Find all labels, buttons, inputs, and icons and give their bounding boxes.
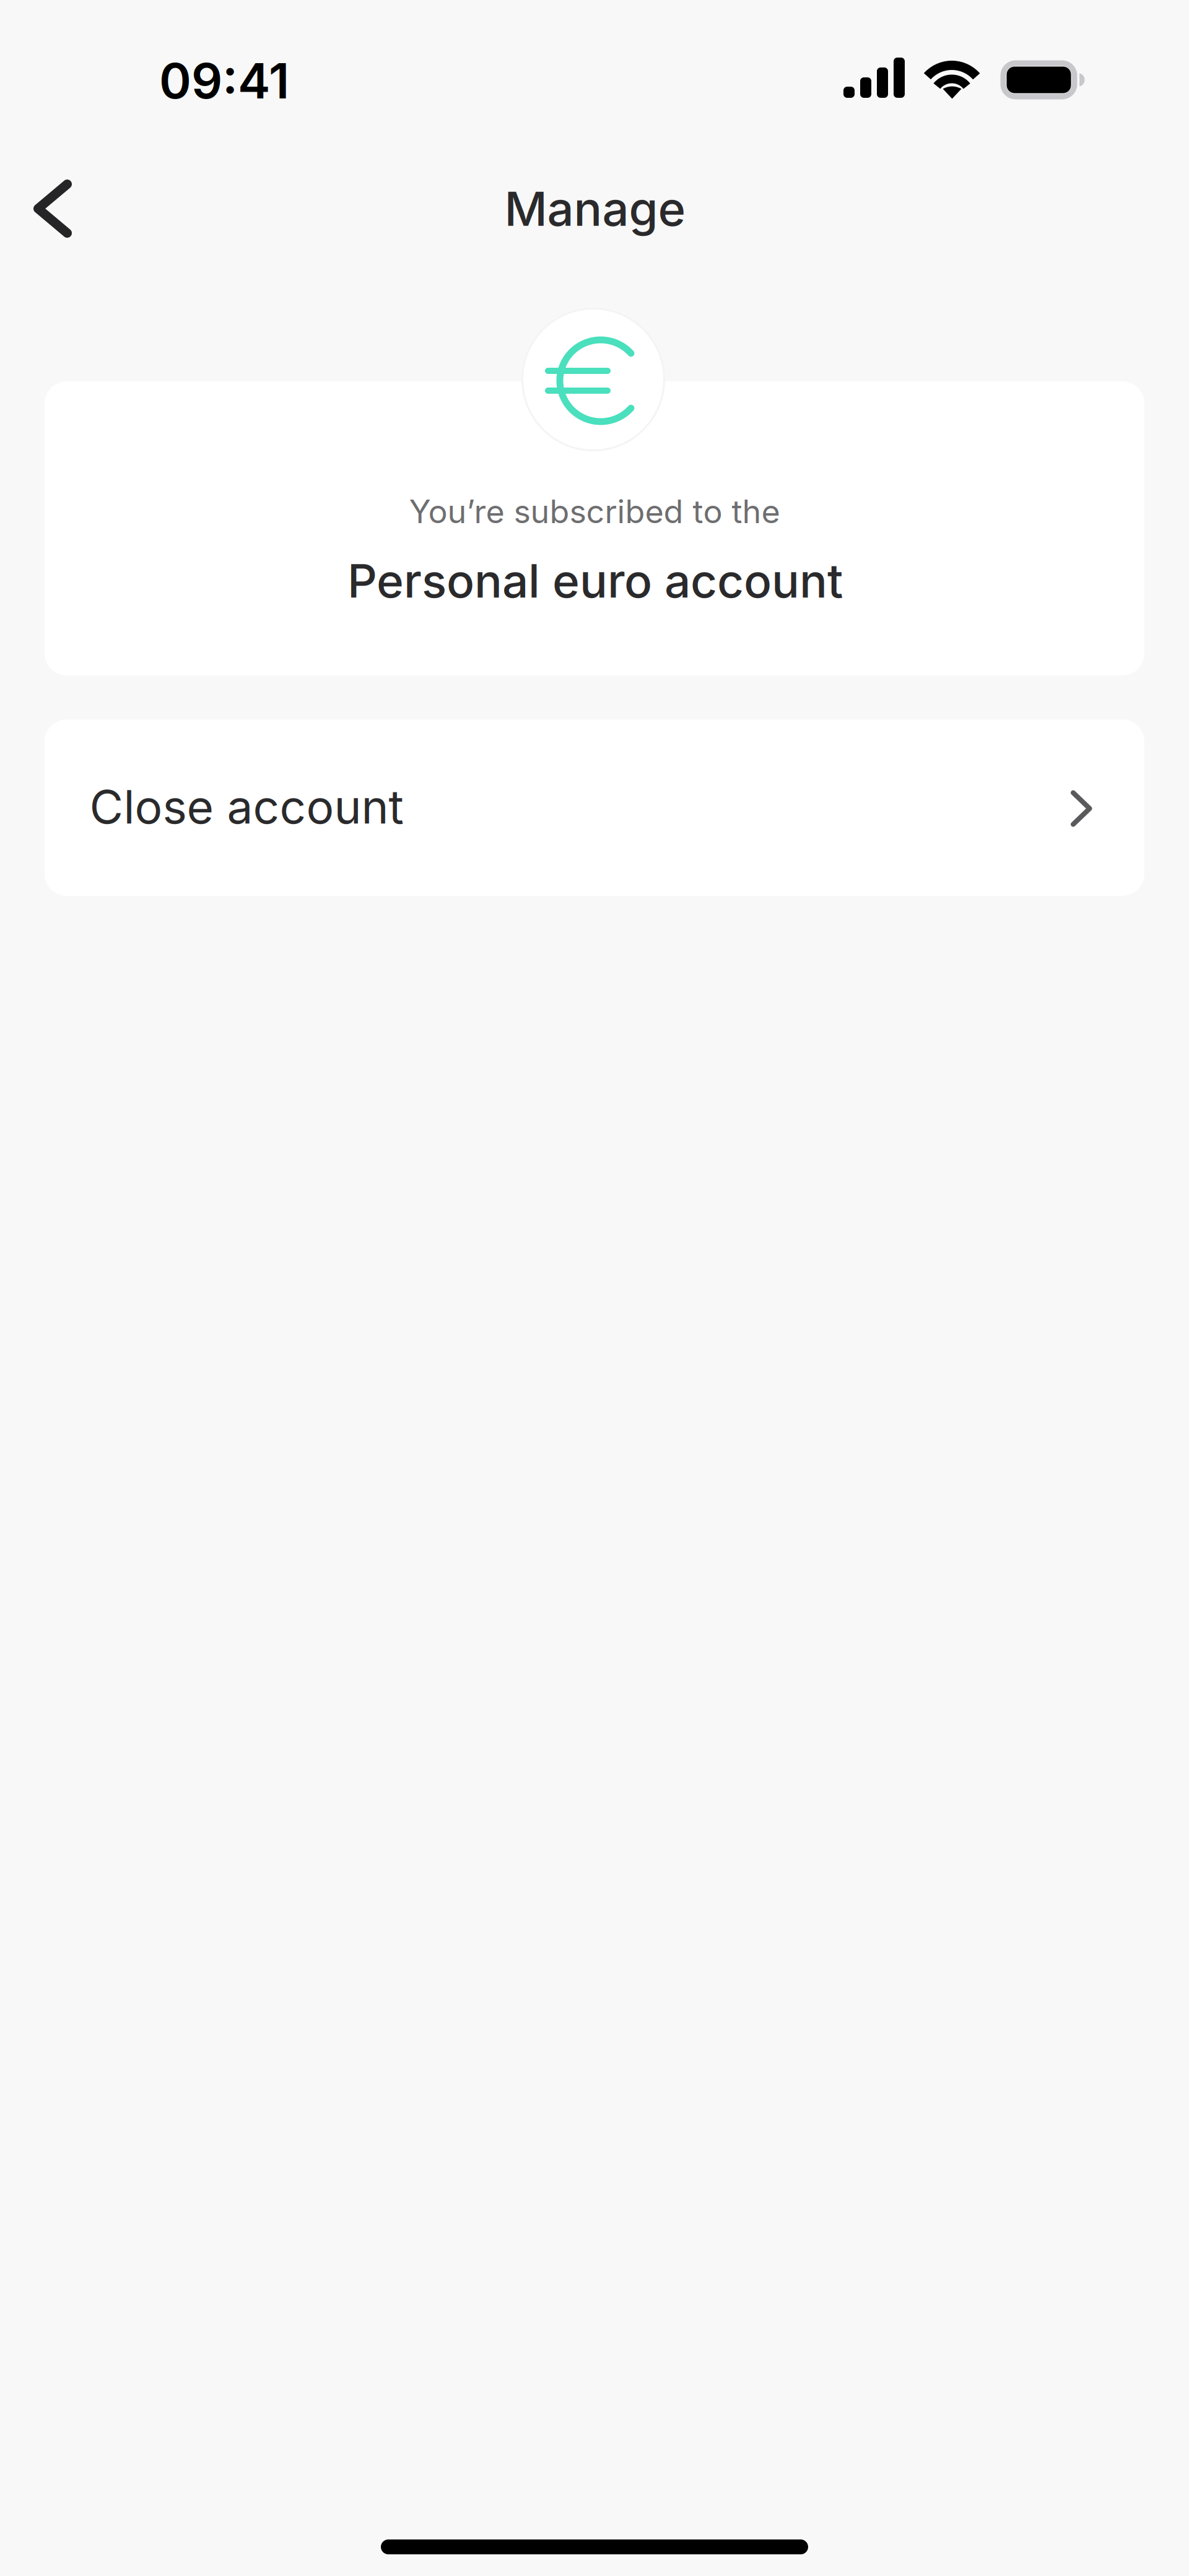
staticText: You’re subscribed to the xyxy=(409,492,780,531)
button[interactable]: Back xyxy=(6,162,99,255)
button[interactable]: Close account xyxy=(45,719,1144,896)
staticText: Close account xyxy=(89,779,403,835)
staticText: Manage xyxy=(504,180,686,237)
staticText: Personal euro account xyxy=(347,553,843,609)
staticText: 09:41 xyxy=(159,51,289,110)
